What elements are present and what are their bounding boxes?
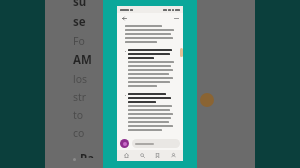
button[interactable]: Home xyxy=(121,150,132,161)
staticText: su xyxy=(73,0,87,10)
staticText: str xyxy=(73,90,87,104)
staticText: Fo xyxy=(73,34,85,48)
button[interactable]: More options xyxy=(172,14,180,22)
button[interactable]: Back xyxy=(120,14,128,22)
button[interactable]: Saved xyxy=(152,150,163,161)
button[interactable]: Account xyxy=(120,139,129,148)
staticText: se xyxy=(73,14,86,30)
staticText: los xyxy=(73,72,88,86)
staticText: Pa xyxy=(80,151,95,158)
staticText: AM xyxy=(73,52,92,68)
staticText: to xyxy=(73,108,84,122)
button[interactable] xyxy=(132,139,180,148)
staticText: co xyxy=(73,126,85,140)
button[interactable]: Search xyxy=(137,150,148,161)
button[interactable]: Profile xyxy=(168,150,179,161)
